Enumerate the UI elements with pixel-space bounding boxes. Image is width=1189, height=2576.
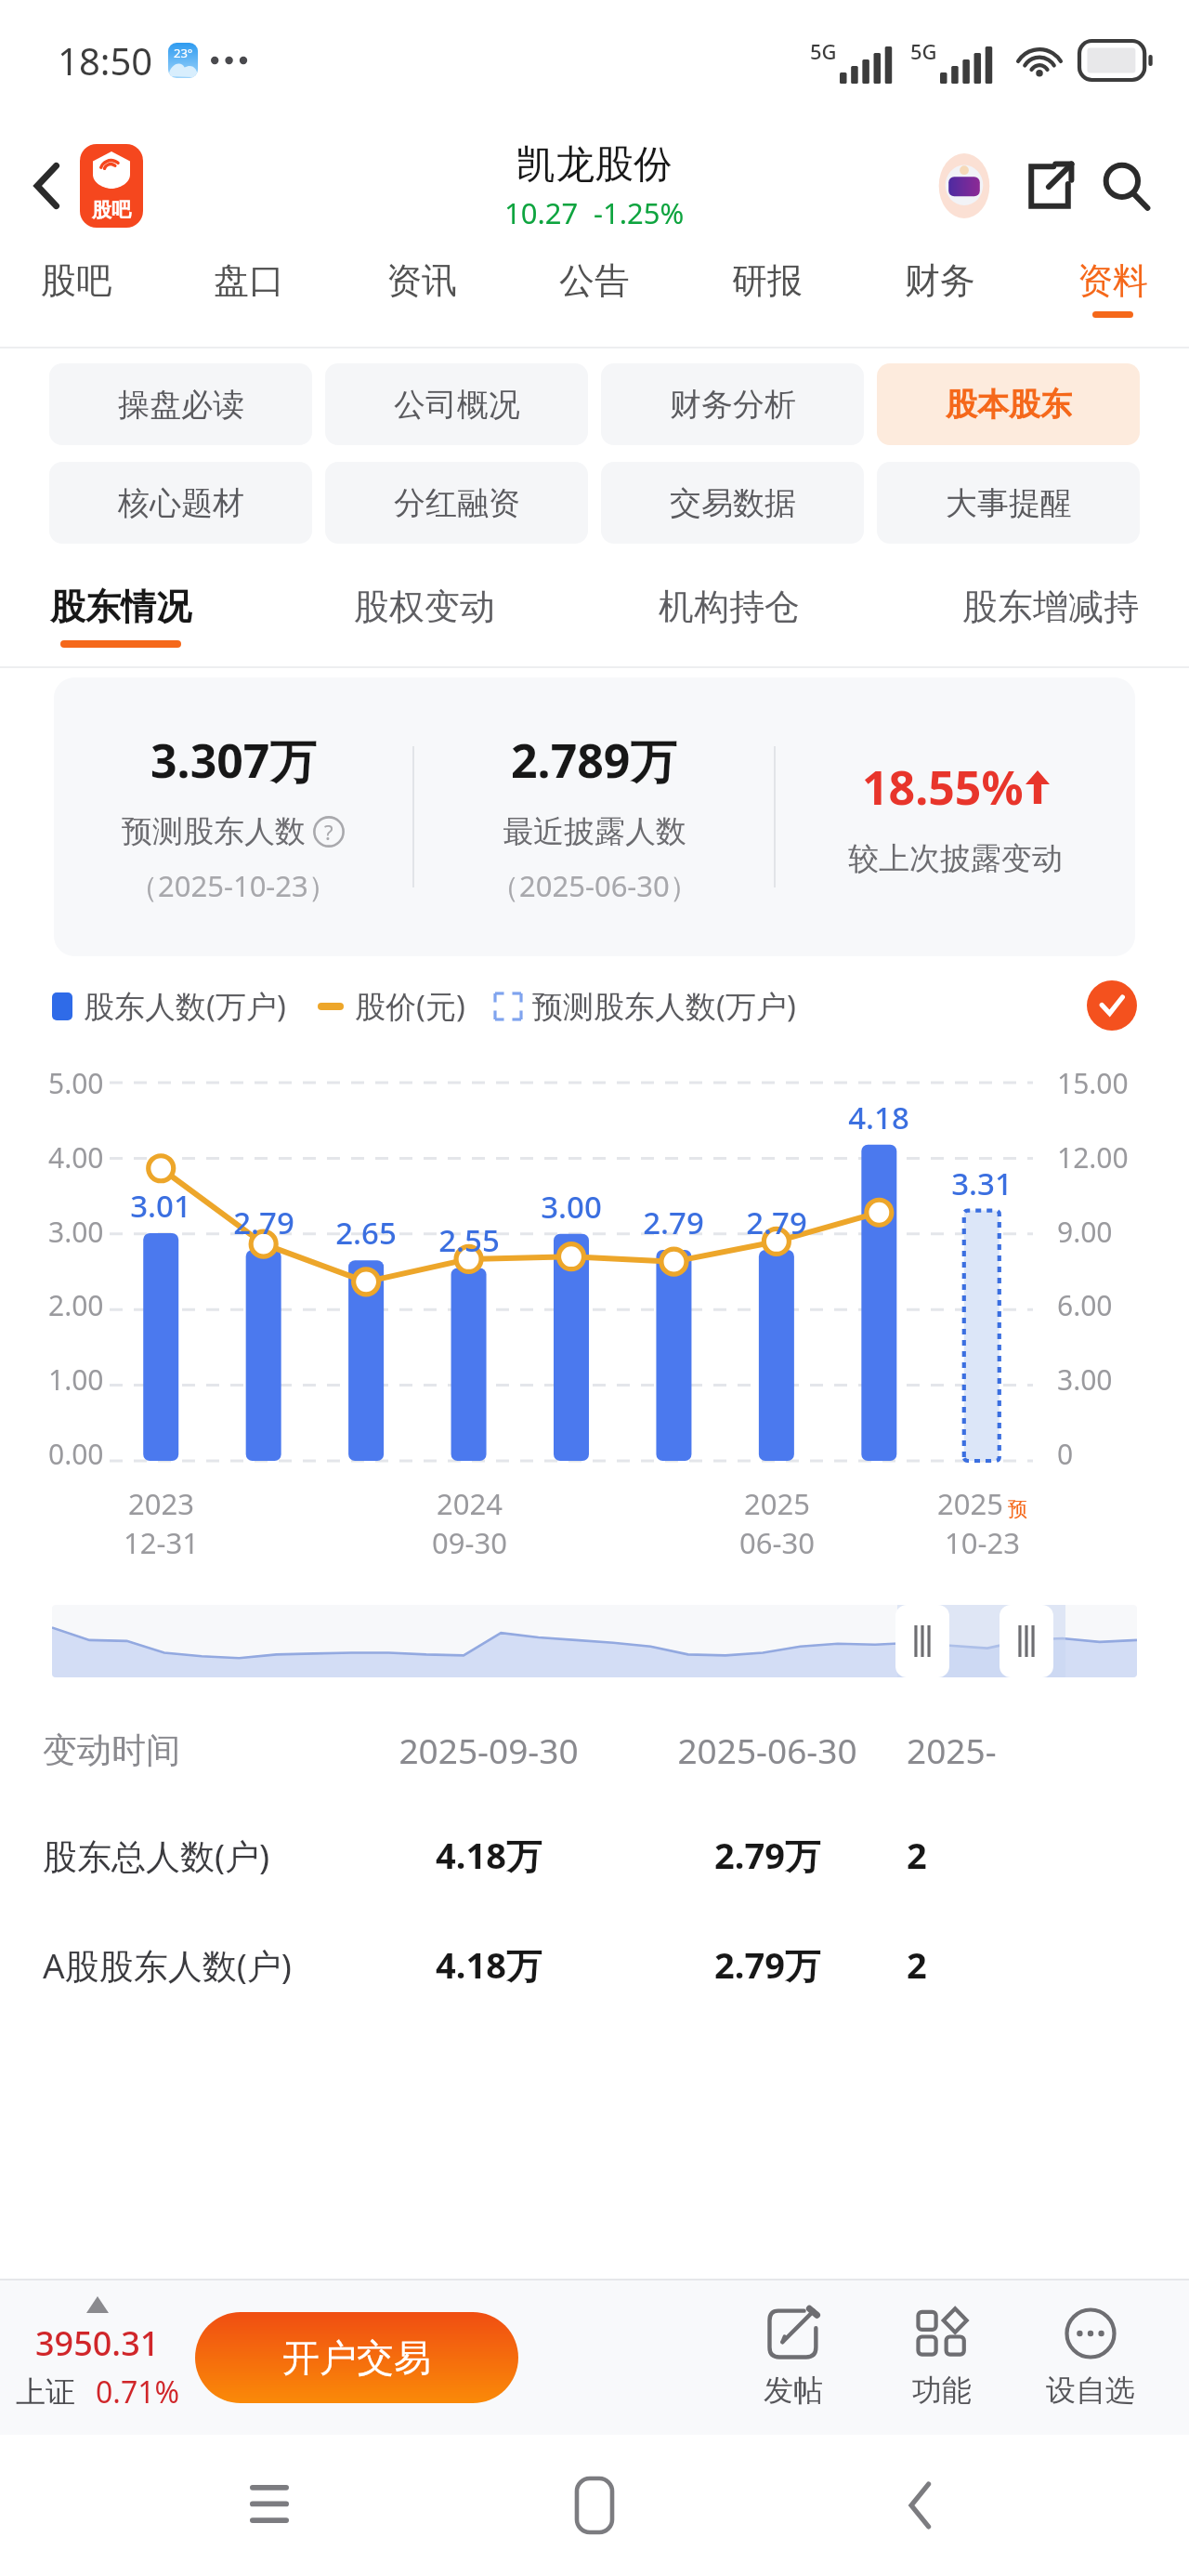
button[interactable]: 分红融资 (325, 462, 588, 544)
button[interactable]: 股价(元) (318, 985, 465, 1027)
staticText: 股价(元) (355, 985, 465, 1027)
button[interactable]: 公告 (546, 251, 643, 325)
button[interactable]: Range start (895, 1605, 949, 1677)
staticText: ? (324, 818, 333, 846)
staticText: 23° (174, 45, 193, 61)
staticText: 预测股东人数 (122, 812, 306, 851)
button[interactable]: Home (539, 2450, 650, 2561)
staticText: 盘口 (214, 258, 284, 303)
staticText: 0.00 (48, 1435, 104, 1473)
staticText: 09-30 (432, 1523, 507, 1562)
staticText: 研报 (732, 258, 803, 303)
button[interactable]: Back (24, 151, 71, 220)
staticText: 凯龙股份 (516, 140, 673, 190)
button[interactable]: 凯龙股份 (504, 140, 685, 232)
button[interactable]: Back (864, 2450, 975, 2561)
staticText: 3.01 (105, 1185, 216, 1227)
staticText: 2025 (937, 1484, 1003, 1523)
button[interactable]: 盘口 (201, 251, 297, 325)
staticText: 股东情况 (50, 585, 191, 629)
staticText: 资讯 (386, 258, 457, 303)
button[interactable]: Chart range (52, 1605, 1137, 1677)
button[interactable]: 3950.31 (0, 2304, 195, 2412)
button[interactable]: 发帖 (719, 2280, 868, 2435)
button[interactable]: 财务 (892, 251, 988, 325)
button[interactable]: Search (1094, 154, 1157, 217)
button[interactable]: 大事提醒 (877, 462, 1140, 544)
staticText: 15.00 (1057, 1064, 1129, 1102)
button[interactable]: Recent apps (214, 2450, 325, 2561)
staticText: 最近披露人数 (503, 812, 686, 851)
button[interactable]: 研报 (719, 251, 816, 325)
staticText: 设自选 (1046, 2372, 1135, 2409)
staticText: 2023 (128, 1484, 194, 1523)
button[interactable]: 功能 (868, 2280, 1016, 2435)
button[interactable]: 股东总人数(户) (0, 1800, 1189, 1910)
button[interactable]: 交易数据 (601, 462, 864, 544)
staticText: A股股东人数(户) (43, 1941, 349, 1989)
staticText: 2.00 (48, 1286, 104, 1324)
staticText: 9.00 (1057, 1213, 1113, 1251)
button[interactable]: 资讯 (373, 251, 470, 325)
button[interactable]: AI assistant (931, 152, 998, 219)
staticText: 2 (907, 1831, 927, 1879)
staticText: 股权变动 (354, 585, 495, 629)
button[interactable]: 3.307万 (54, 677, 412, 956)
staticText: 大事提醒 (946, 483, 1072, 523)
staticText: 发帖 (764, 2372, 823, 2409)
button[interactable]: 设自选 (1016, 2280, 1165, 2435)
button[interactable]: Range end (1000, 1605, 1053, 1677)
staticText: 5.00 (48, 1064, 104, 1102)
button[interactable]: 2.789万 (414, 677, 774, 956)
staticText: 2024 (437, 1484, 503, 1523)
button[interactable]: 股吧 (28, 251, 124, 325)
staticText: 分红融资 (394, 483, 520, 523)
staticText: 2025-09-30 (349, 1727, 628, 1773)
button[interactable]: 操盘必读 (49, 363, 312, 445)
staticText: 12.00 (1057, 1138, 1129, 1176)
staticText: 06-30 (739, 1523, 815, 1562)
staticText: 预测股东人数(万户) (532, 985, 796, 1027)
staticText: 0 (1057, 1435, 1074, 1473)
staticText: 6.00 (1057, 1286, 1113, 1324)
staticText: 2.55 (413, 1219, 525, 1261)
button[interactable]: 预测股东人数(万户) (495, 985, 796, 1027)
button[interactable]: 开户交易 (195, 2312, 518, 2403)
staticText: 2.789万 (511, 729, 677, 792)
staticText: 财务分析 (670, 385, 796, 425)
staticText: 公告 (559, 258, 630, 303)
button[interactable]: 机构持仓 (655, 559, 804, 653)
button[interactable]: 股东人数(万户) (52, 985, 286, 1027)
button[interactable]: 公司概况 (325, 363, 588, 445)
button[interactable]: 股东情况 (46, 559, 195, 653)
button[interactable]: Share (1018, 154, 1081, 217)
button[interactable]: 股本股东 (877, 363, 1140, 445)
button[interactable]: 股权变动 (350, 559, 499, 653)
button[interactable]: A股股东人数(户) (0, 1910, 1189, 2019)
button[interactable]: 18.55% (776, 677, 1135, 956)
button[interactable]: 资料 (1065, 251, 1161, 325)
button[interactable]: 核心题材 (49, 462, 312, 544)
staticText: 股东增减持 (962, 585, 1139, 629)
button[interactable]: 股东增减持 (959, 559, 1143, 653)
staticText: 2.79 (208, 1202, 320, 1243)
staticText: 操盘必读 (118, 385, 244, 425)
staticText: 股吧 (41, 258, 111, 303)
staticText: 2025-06-30 (628, 1727, 907, 1773)
staticText: 股东人数(万户) (84, 985, 286, 1027)
button[interactable]: 股吧 (80, 144, 143, 228)
staticText: 股本股东 (946, 385, 1072, 425)
staticText: 2.79 (618, 1202, 729, 1243)
staticText: 核心题材 (118, 483, 244, 523)
staticText: 3.307万 (150, 729, 317, 792)
staticText: 开户交易 (282, 2334, 431, 2381)
button[interactable]: Confirm selection (1087, 980, 1137, 1031)
staticText: 5G (910, 37, 937, 65)
staticText: 2.79 (721, 1202, 832, 1243)
staticText: 功能 (912, 2372, 972, 2409)
button[interactable]: Help (313, 816, 345, 848)
staticText: 上证 (16, 2373, 75, 2411)
staticText: 10-23 (945, 1523, 1020, 1562)
staticText: 2.79万 (628, 1831, 907, 1879)
button[interactable]: 财务分析 (601, 363, 864, 445)
